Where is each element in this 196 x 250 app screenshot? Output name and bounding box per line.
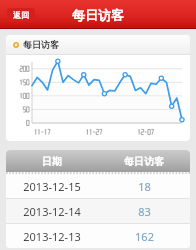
staticText: 2013-12-14 (23, 204, 81, 219)
staticText: 2013-12-13 (23, 229, 81, 244)
button[interactable]: 2013-12-13 (6, 224, 190, 248)
staticText: 162 (135, 229, 154, 244)
staticText: 每日访客 (124, 155, 164, 168)
button[interactable]: 每日访客 (6, 35, 190, 54)
staticText: 每日访客 (23, 39, 59, 50)
staticText: 日期 (42, 155, 62, 168)
staticText: 83 (138, 204, 151, 219)
staticText: 2013-12-15 (23, 179, 81, 194)
button[interactable]: 2013-12-15 (6, 174, 190, 198)
staticText: 返回 (13, 10, 29, 20)
button[interactable]: 2013-12-14 (6, 199, 190, 223)
staticText: 18 (138, 179, 151, 194)
staticText: 每日访客 (72, 7, 124, 23)
button[interactable]: 返回 (7, 8, 35, 22)
